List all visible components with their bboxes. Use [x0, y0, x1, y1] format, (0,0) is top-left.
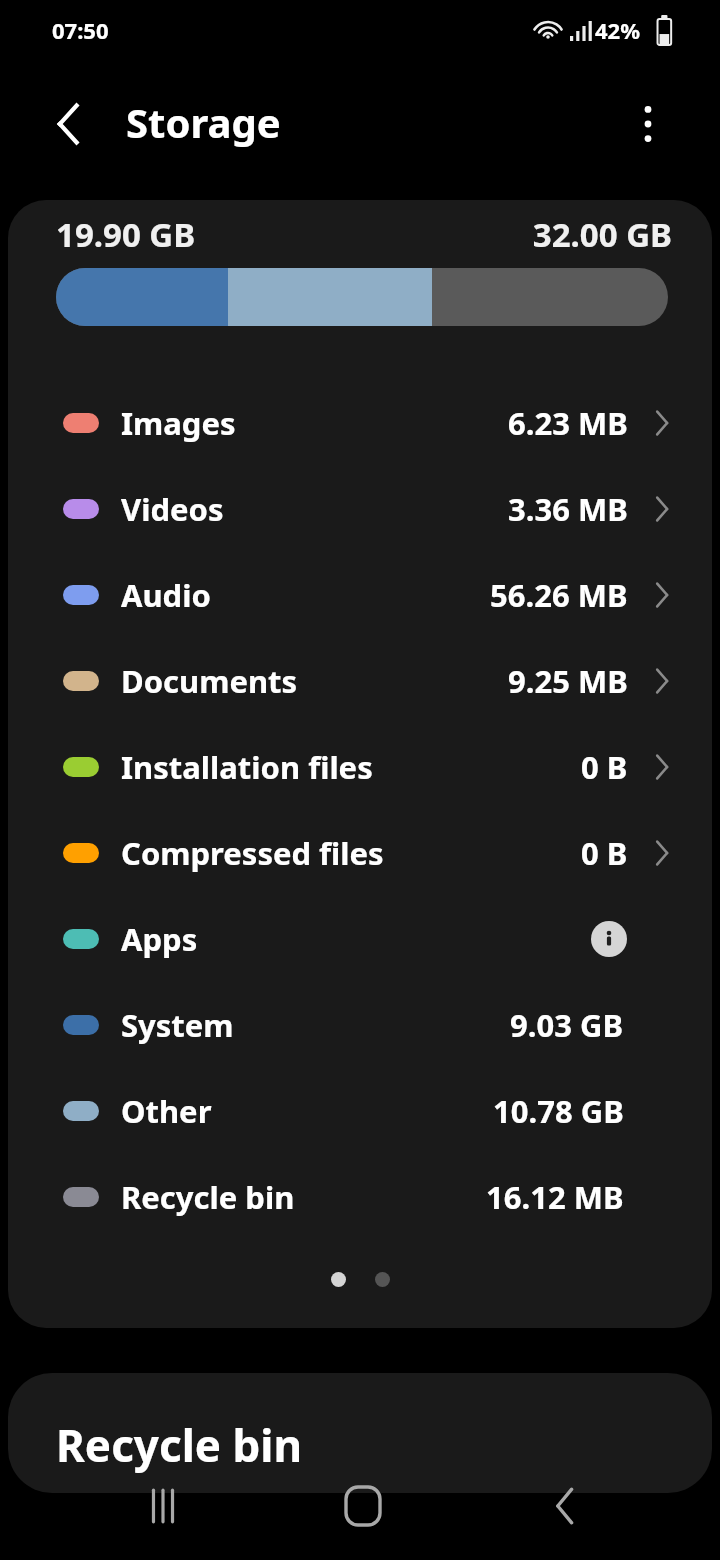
- staticText: System: [121, 1004, 234, 1046]
- staticText: 3.36 MB: [508, 488, 628, 530]
- button[interactable]: Recycle bin: [8, 1154, 712, 1240]
- staticText: Recycle bin: [121, 1176, 295, 1218]
- button[interactable]: More options: [614, 90, 682, 158]
- staticText: Videos: [121, 488, 224, 530]
- button[interactable]: Images: [8, 380, 712, 466]
- staticText: Recycle bin: [56, 1415, 303, 1475]
- staticText: 10.78 GB: [493, 1090, 624, 1132]
- staticText: 19.90 GB: [56, 212, 196, 257]
- staticText: 32.00 GB: [8, 212, 672, 257]
- staticText: 16.12 MB: [486, 1176, 624, 1218]
- staticText: 0 B: [581, 832, 628, 874]
- button[interactable]: Recents: [113, 1456, 213, 1556]
- button[interactable]: Compressed files: [8, 810, 712, 896]
- staticText: 07:50: [52, 15, 109, 45]
- staticText: Installation files: [121, 746, 373, 788]
- staticText: 56.26 MB: [490, 574, 628, 616]
- button[interactable]: Videos: [8, 466, 712, 552]
- button[interactable]: System: [8, 982, 712, 1068]
- staticText: Storage: [126, 95, 281, 149]
- staticText: Other: [121, 1090, 212, 1132]
- staticText: 6.23 MB: [508, 402, 628, 444]
- staticText: Apps: [121, 918, 198, 960]
- button[interactable]: Back: [36, 90, 104, 158]
- button[interactable]: Installation files: [8, 724, 712, 810]
- staticText: 9.03 GB: [510, 1004, 624, 1046]
- button[interactable]: Audio: [8, 552, 712, 638]
- staticText: 0 B: [581, 746, 628, 788]
- button[interactable]: Documents: [8, 638, 712, 724]
- button[interactable]: Recycle bin: [8, 1373, 712, 1493]
- staticText: Images: [121, 402, 236, 444]
- staticText: Compressed files: [121, 832, 384, 874]
- staticText: 42%: [595, 15, 641, 45]
- button[interactable]: Back: [515, 1456, 615, 1556]
- button[interactable]: Home: [313, 1456, 413, 1556]
- staticText: Documents: [121, 660, 298, 702]
- button[interactable]: Apps: [8, 896, 712, 982]
- staticText: 9.25 MB: [508, 660, 628, 702]
- other: App storage info: [591, 921, 627, 957]
- button[interactable]: Other: [8, 1068, 712, 1154]
- staticText: Audio: [121, 574, 211, 616]
